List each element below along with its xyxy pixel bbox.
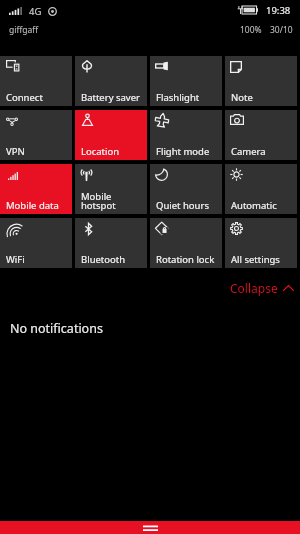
button[interactable]: Location — [75, 110, 147, 160]
button[interactable]: More options — [0, 521, 300, 534]
button[interactable]: Mobile hotspot — [75, 164, 147, 214]
staticText: WiFi — [6, 253, 25, 266]
staticText: giffgaff — [9, 24, 39, 36]
staticText: Mobile data — [6, 199, 59, 212]
staticText: Flashlight — [156, 91, 200, 104]
staticText: Bluetooth — [81, 253, 126, 266]
button[interactable]: Automatic — [225, 164, 297, 214]
button[interactable]: Connect — [0, 56, 72, 106]
staticText: No notifications — [10, 320, 103, 337]
staticText: VPN — [6, 145, 25, 158]
staticText: Mobile hotspot — [81, 190, 147, 212]
staticText: Battery saver — [81, 91, 140, 104]
button[interactable]: VPN — [0, 110, 72, 160]
button[interactable]: Bluetooth — [75, 218, 147, 268]
staticText: Note — [231, 91, 253, 104]
button[interactable]: WiFi — [0, 218, 72, 268]
button[interactable]: Flight mode — [150, 110, 222, 160]
button[interactable]: Flashlight — [150, 56, 222, 106]
button[interactable]: Mobile data — [0, 164, 72, 214]
staticText: Collapse — [230, 280, 278, 296]
staticText: Location — [81, 145, 120, 158]
button[interactable]: Collapse — [222, 278, 300, 298]
staticText: Automatic — [231, 199, 277, 212]
staticText: Flight mode — [156, 145, 210, 158]
staticText: 30/10 — [270, 24, 293, 36]
staticText: Camera — [231, 145, 266, 158]
button[interactable]: Note — [225, 56, 297, 106]
button[interactable]: Battery saver — [75, 56, 147, 106]
staticText: Quiet hours — [156, 199, 209, 212]
button[interactable]: Quiet hours — [150, 164, 222, 214]
button[interactable]: All settings — [225, 218, 297, 268]
staticText: Rotation lock — [156, 253, 215, 266]
staticText: All settings — [231, 253, 280, 266]
staticText: 4G — [29, 5, 42, 18]
staticText: Connect — [6, 91, 43, 104]
button[interactable]: Rotation lock — [150, 218, 222, 268]
staticText: 100% — [240, 24, 262, 36]
staticText: 19:38 — [266, 4, 291, 17]
button[interactable]: Camera — [225, 110, 297, 160]
